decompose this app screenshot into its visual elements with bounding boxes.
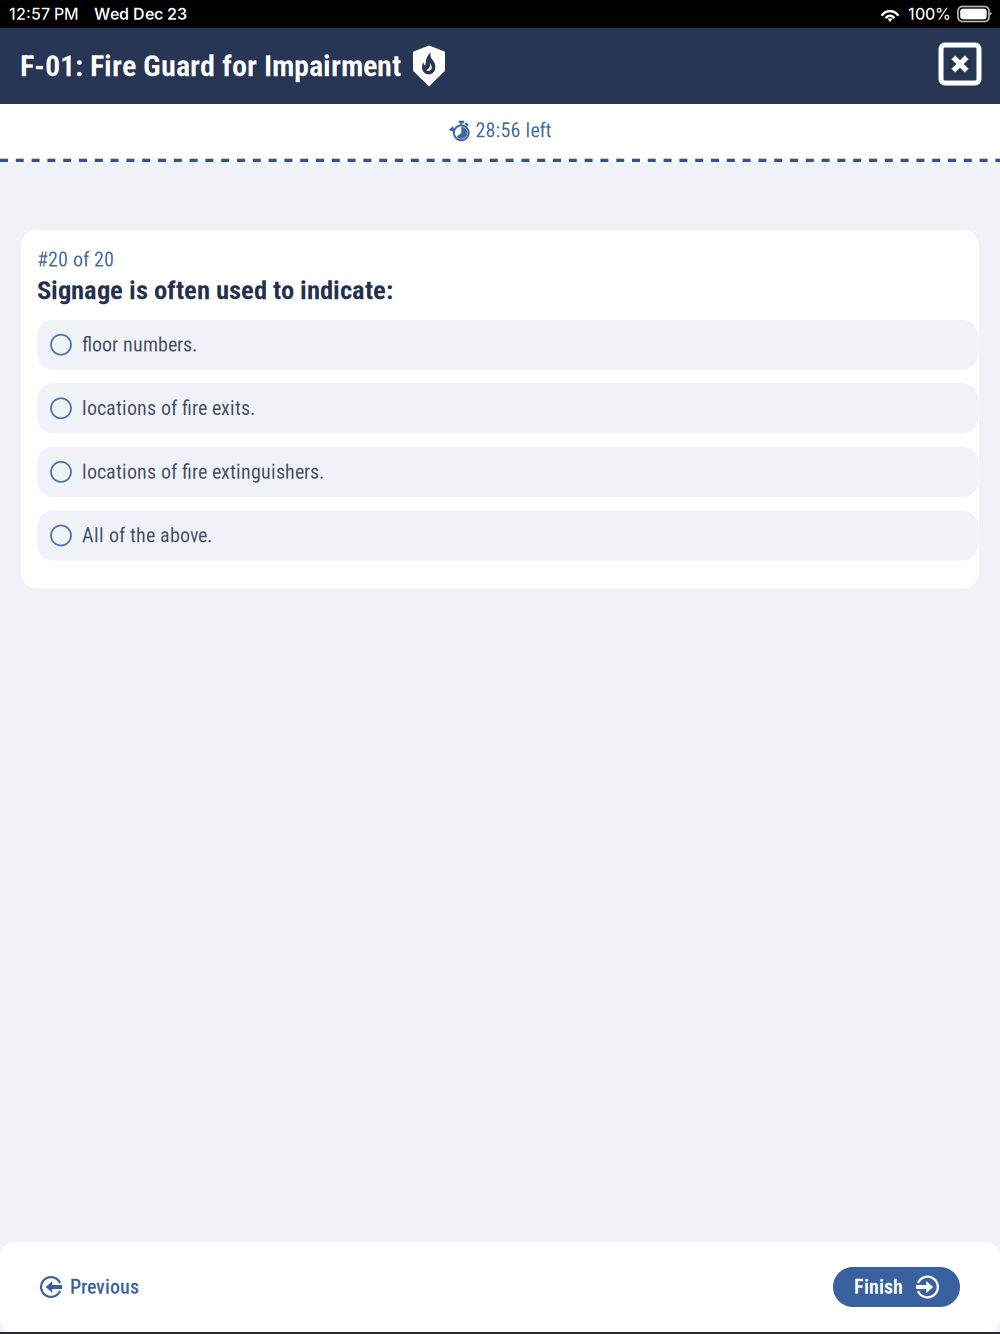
staticText: 12:57 PM — [9, 4, 79, 24]
staticText: Previous — [70, 1275, 139, 1299]
staticText: locations of fire exits. — [82, 397, 255, 420]
button[interactable]: All of the above. — [37, 510, 978, 560]
staticText: 100% — [908, 4, 951, 24]
button[interactable]: Finish — [833, 1267, 960, 1307]
staticText: #20 of 20 — [37, 248, 114, 271]
staticText: Finish — [854, 1275, 903, 1299]
button[interactable]: locations of fire exits. — [37, 383, 978, 433]
button[interactable]: Close — [933, 39, 987, 93]
staticText: floor numbers. — [82, 333, 197, 356]
staticText: locations of fire extinguishers. — [82, 460, 324, 484]
button[interactable]: locations of fire extinguishers. — [37, 447, 978, 497]
staticText: All of the above. — [82, 524, 212, 547]
staticText: Wed Dec 23 — [94, 4, 187, 24]
button[interactable]: floor numbers. — [37, 320, 978, 370]
staticText: 28:56 left — [475, 119, 551, 142]
button[interactable]: Previous — [30, 1263, 149, 1311]
staticText: Signage is often used to indicate: — [37, 274, 393, 306]
staticText: F-01: Fire Guard for Impairment — [20, 48, 401, 84]
